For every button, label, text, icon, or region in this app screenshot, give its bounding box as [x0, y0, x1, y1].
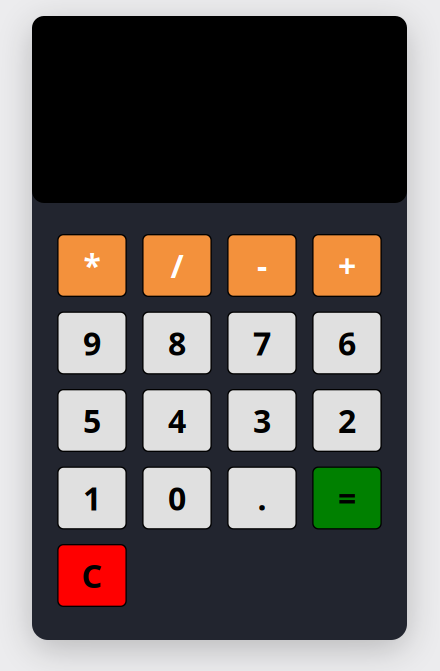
staticText: =	[338, 477, 356, 519]
staticText: 4	[168, 399, 186, 442]
staticText: 9	[83, 322, 101, 364]
button[interactable]: 6	[312, 311, 382, 374]
staticText: 0	[168, 477, 186, 519]
button[interactable]: 9	[57, 311, 127, 374]
staticText: -	[257, 244, 267, 287]
staticText: *	[83, 244, 100, 287]
staticText: .	[257, 477, 266, 519]
button[interactable]: Minus	[227, 234, 297, 297]
button[interactable]: 0	[142, 466, 212, 529]
button[interactable]: Equals	[312, 466, 382, 529]
staticText: +	[338, 244, 356, 287]
staticText: 8	[168, 322, 186, 364]
button[interactable]: Multiply	[57, 234, 127, 297]
staticText: /	[170, 244, 183, 287]
button[interactable]: 8	[142, 311, 212, 374]
button[interactable]: Clear	[57, 544, 127, 607]
button[interactable]: Decimal point	[227, 466, 297, 529]
button[interactable]: 7	[227, 311, 297, 374]
button[interactable]: 3	[227, 389, 297, 452]
staticText: 3	[253, 399, 271, 442]
staticText: 2	[338, 399, 356, 442]
staticText: 5	[83, 399, 101, 442]
staticText: C	[81, 554, 102, 597]
staticText: 1	[83, 477, 101, 519]
button[interactable]: 5	[57, 389, 127, 452]
staticText: 7	[253, 322, 271, 364]
staticText: 6	[338, 322, 356, 364]
button[interactable]: 2	[312, 389, 382, 452]
button[interactable]: Divide	[142, 234, 212, 297]
button[interactable]: 4	[142, 389, 212, 452]
button[interactable]: Plus	[312, 234, 382, 297]
button[interactable]: 1	[57, 466, 127, 529]
